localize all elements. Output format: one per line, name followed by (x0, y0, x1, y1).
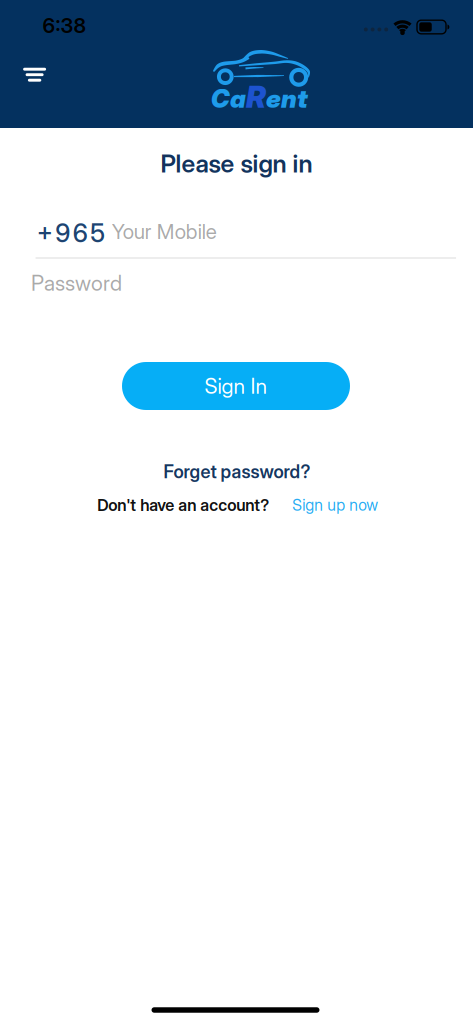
button[interactable]: Sign In (122, 362, 350, 410)
staticText: Ca (211, 83, 246, 114)
staticText: R (246, 79, 266, 115)
staticText: Password (31, 270, 122, 296)
staticText: +965 (37, 218, 105, 248)
staticText: Don't have an account? (97, 495, 269, 515)
staticText: Please sign in (160, 149, 312, 178)
staticText: Your Mobile (112, 219, 217, 244)
button[interactable]: Sign up now (290, 493, 380, 516)
staticText: Sign up now (292, 495, 378, 514)
staticText: 6:38 (42, 13, 85, 38)
staticText: ent (266, 83, 308, 114)
staticText: Sign In (204, 373, 267, 399)
staticText: Forget password? (163, 461, 310, 483)
button[interactable]: Menu (17, 62, 52, 88)
button[interactable]: Forget password? (159, 457, 314, 487)
